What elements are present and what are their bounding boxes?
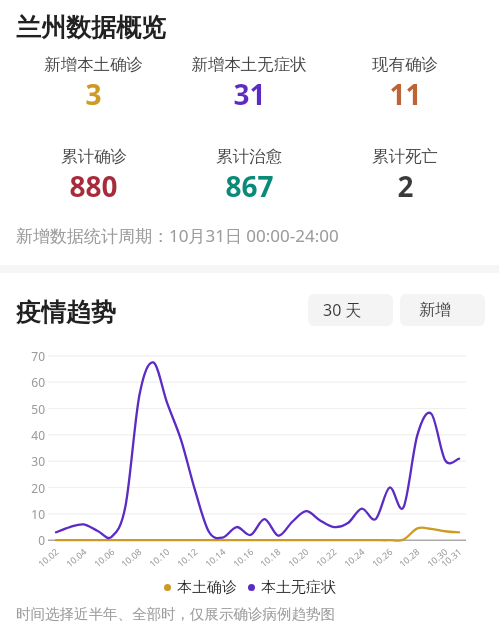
button[interactable]: 累计确诊 xyxy=(16,146,171,205)
staticText: 0 xyxy=(15,532,45,548)
staticText: 70 xyxy=(15,348,45,364)
staticText: 10.04 xyxy=(59,545,89,573)
staticText: 30 xyxy=(15,453,45,469)
staticText: 新增数据统计周期：10月31日 00:00-24:00 xyxy=(16,224,339,247)
staticText: 新增本土无症状 xyxy=(191,54,307,75)
staticText: 累计确诊 xyxy=(61,146,127,167)
button[interactable]: 新增本土确诊 xyxy=(16,54,171,113)
staticText: 10.30 xyxy=(420,545,450,573)
staticText: 10.06 xyxy=(87,545,117,573)
staticText: 新增 xyxy=(419,300,451,320)
staticText: 3 xyxy=(85,75,102,113)
staticText: 2 xyxy=(397,167,414,205)
button[interactable]: 30 天 xyxy=(308,294,393,326)
staticText: 累计死亡 xyxy=(372,146,438,167)
staticText: 兰州数据概览 xyxy=(16,12,166,43)
staticText: 60 xyxy=(15,374,45,390)
staticText: 50 xyxy=(15,401,45,417)
staticText: 新增本土确诊 xyxy=(44,54,143,75)
button[interactable]: 现有确诊 xyxy=(327,54,483,113)
staticText: 10.18 xyxy=(253,545,283,573)
staticText: 10.20 xyxy=(281,545,311,573)
staticText: 累计治愈 xyxy=(216,146,282,167)
staticText: 10.08 xyxy=(114,545,144,573)
staticText: 10.24 xyxy=(337,545,367,573)
staticText: 10.26 xyxy=(365,545,395,573)
staticText: 时间选择近半年、全部时，仅展示确诊病例趋势图 xyxy=(16,605,335,623)
staticText: 10.10 xyxy=(142,545,172,573)
staticText: 867 xyxy=(225,167,274,205)
staticText: 880 xyxy=(69,167,118,205)
staticText: 20 xyxy=(15,480,45,496)
staticText: 现有确诊 xyxy=(372,54,438,75)
staticText: 10.14 xyxy=(198,545,228,573)
staticText: 10.12 xyxy=(170,545,200,573)
staticText: 10.28 xyxy=(392,545,422,573)
staticText: 30 天 xyxy=(323,299,362,321)
staticText: 10.16 xyxy=(226,545,256,573)
staticText: 本土确诊 xyxy=(177,578,237,597)
staticText: 31 xyxy=(233,75,266,113)
staticText: 11 xyxy=(389,75,422,113)
staticText: 10.02 xyxy=(31,545,61,573)
button[interactable]: 新增本土无症状 xyxy=(171,54,327,113)
staticText: 本土无症状 xyxy=(261,578,336,597)
staticText: 10.31 xyxy=(434,545,464,573)
staticText: 40 xyxy=(15,427,45,443)
staticText: 10 xyxy=(15,506,45,522)
staticText: 疫情趋势 xyxy=(16,297,116,328)
staticText: 10.22 xyxy=(309,545,339,573)
button[interactable]: 新增 xyxy=(400,294,485,326)
button[interactable]: 累计死亡 xyxy=(327,146,483,205)
button[interactable]: 累计治愈 xyxy=(171,146,327,205)
